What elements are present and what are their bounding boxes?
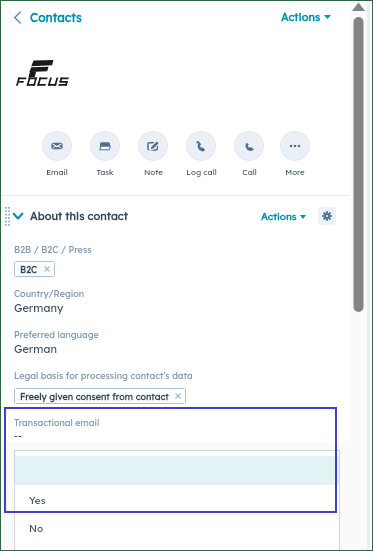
button[interactable]: Log call: [177, 131, 225, 177]
button[interactable]: B2C: [14, 261, 55, 277]
staticText: --: [14, 429, 22, 442]
staticText: Task: [96, 167, 114, 177]
staticText: Freely given consent from contact: [20, 391, 169, 402]
staticText: Country/Region: [14, 288, 85, 299]
button[interactable]: More: [273, 131, 317, 177]
staticText: More: [285, 167, 305, 177]
button[interactable]: Transactional email: [4, 407, 337, 513]
staticText: Email: [46, 167, 68, 177]
button[interactable]: Actions: [281, 6, 331, 28]
staticText: About this contact: [30, 209, 128, 223]
staticText: B2C: [20, 264, 38, 275]
button[interactable]: Actions: [261, 210, 306, 223]
button[interactable]: No: [29, 522, 44, 535]
staticText: Call: [242, 167, 257, 177]
staticText: Legal basis for processing contact's dat…: [14, 370, 193, 381]
button[interactable]: Yes: [29, 494, 46, 507]
button[interactable]: Task: [81, 131, 129, 177]
staticText: Actions: [261, 210, 297, 223]
staticText: Note: [144, 167, 163, 177]
staticText: Actions: [281, 10, 321, 24]
button[interactable]: Call: [225, 131, 273, 177]
staticText: B2B / B2C / Press: [14, 244, 92, 255]
staticText: Transactional email: [14, 417, 100, 428]
staticText: Log call: [186, 167, 217, 177]
button[interactable]: Contacts: [14, 6, 82, 28]
button[interactable]: Freely given consent from contact: [14, 388, 186, 404]
button[interactable]: Settings: [318, 207, 336, 225]
staticText: Germany: [14, 301, 64, 315]
staticText: Preferred language: [14, 329, 99, 340]
staticText: German: [14, 342, 57, 356]
staticText: Contacts: [30, 10, 82, 25]
button[interactable]: Note: [129, 131, 177, 177]
button[interactable]: Email: [33, 131, 81, 177]
